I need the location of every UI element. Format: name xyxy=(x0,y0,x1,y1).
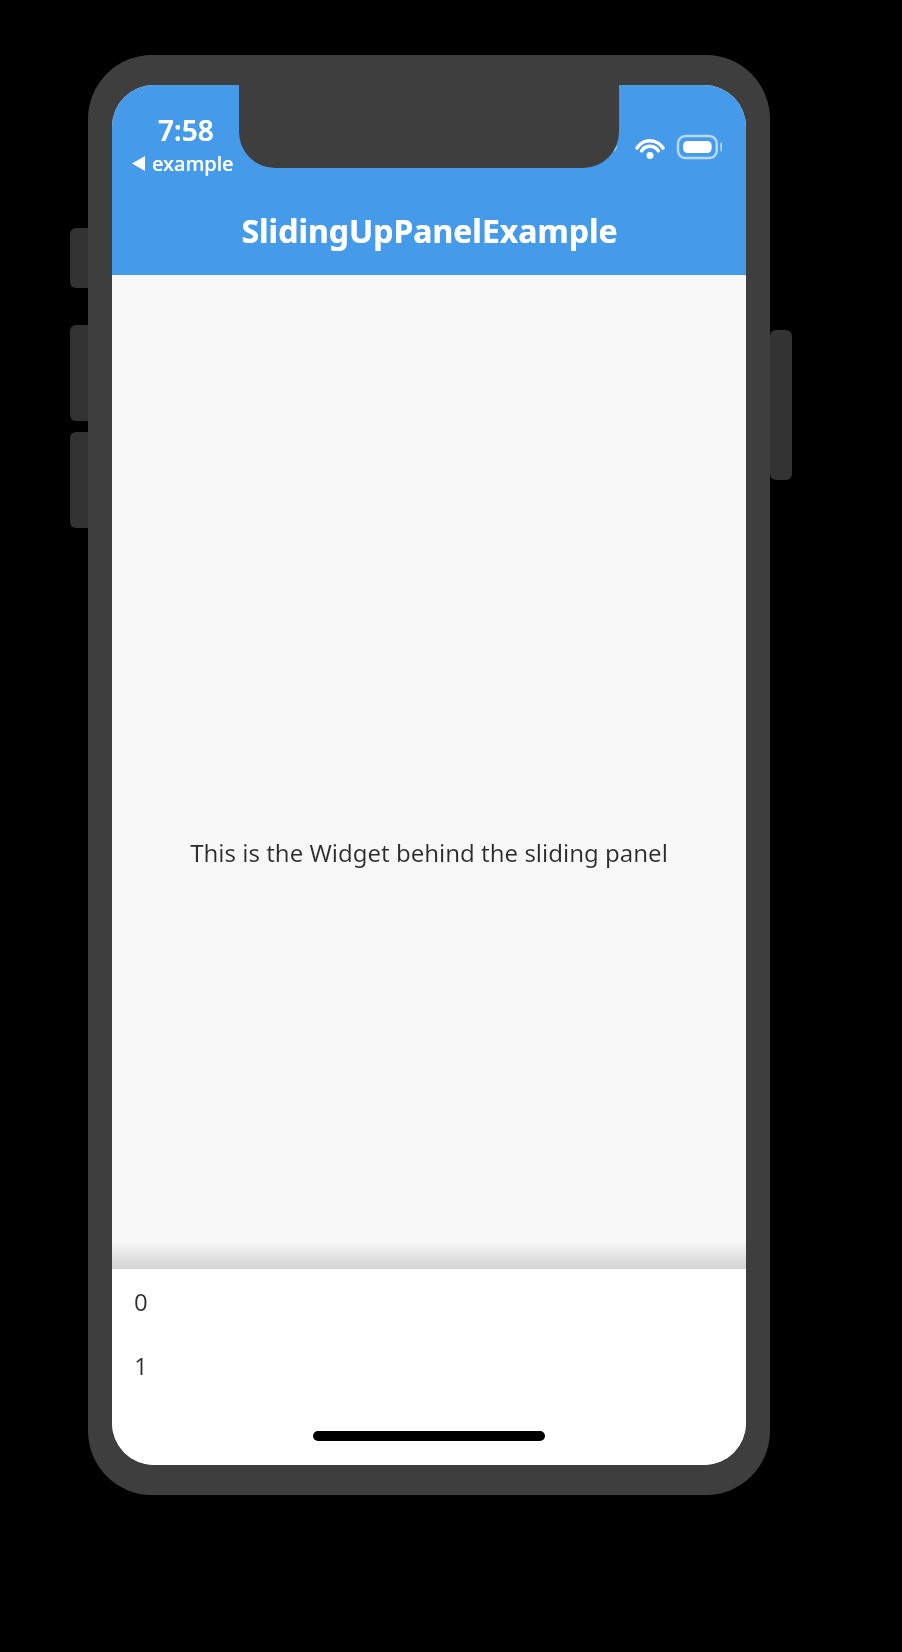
staticText: example xyxy=(152,150,234,177)
staticText: 1 xyxy=(134,1349,148,1382)
staticText: 0 xyxy=(134,1285,148,1318)
staticText: This is the Widget behind the sliding pa… xyxy=(190,836,668,869)
button[interactable]: 0 xyxy=(112,1269,746,1333)
button[interactable]: 1 xyxy=(112,1333,746,1397)
button[interactable]: Back to example xyxy=(126,147,240,180)
staticText: SlidingUpPanelExample xyxy=(241,209,618,253)
staticText: 7:58 xyxy=(158,111,214,149)
